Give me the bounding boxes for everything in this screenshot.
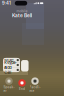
button[interactable]: End (16, 79, 28, 91)
button[interactable]: Add Call (3, 68, 20, 72)
button[interactable]: Keypad (3, 63, 20, 67)
button[interactable]: FaceTime (29, 77, 41, 93)
staticText: End (19, 87, 25, 91)
staticText: Mute (4, 58, 13, 62)
staticText: Kate Bell (12, 12, 32, 18)
staticText: FaceTime (29, 85, 40, 93)
staticText: Add Call (4, 65, 11, 75)
button[interactable]: Speaker (3, 77, 15, 93)
button[interactable]: Mute (3, 58, 20, 62)
staticText: mobile (16, 9, 27, 13)
staticText: 9:41 (2, 1, 11, 6)
staticText: Speaker (3, 85, 14, 93)
staticText: Keypad (4, 60, 16, 70)
